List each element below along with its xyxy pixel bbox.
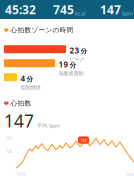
- staticText: 分: [69, 61, 76, 69]
- staticText: kcal: [75, 10, 85, 17]
- staticText: 19: [58, 59, 68, 70]
- staticText: 163: [6, 135, 12, 141]
- staticText: 脂肪燃焼: [20, 84, 40, 91]
- staticText: 23: [69, 45, 79, 56]
- staticText: 分: [80, 47, 87, 55]
- staticText: 心拍数ゾーンの時間: [10, 26, 73, 34]
- staticText: 126: [6, 148, 12, 154]
- staticText: ピーク: [69, 56, 84, 63]
- staticText: 745: [53, 1, 74, 17]
- staticText: 心拍数: [10, 99, 31, 107]
- staticText: 147: [4, 109, 34, 132]
- staticText: 18:52: [125, 171, 134, 177]
- staticText: 172: [80, 137, 86, 143]
- staticText: 平均 bpm: [37, 122, 60, 129]
- staticText: 45:32: [5, 1, 36, 17]
- staticText: 147: [100, 1, 121, 17]
- staticText: bpm: [122, 10, 133, 17]
- staticText: 18:03: [16, 171, 25, 177]
- staticText: 4: [20, 73, 25, 84]
- staticText: 有酸素運動: [58, 70, 83, 77]
- staticText: 分: [26, 75, 33, 83]
